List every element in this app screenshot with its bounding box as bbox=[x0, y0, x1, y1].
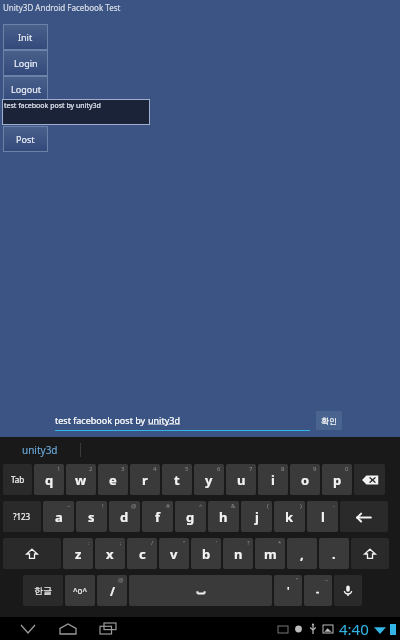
button[interactable]: 1 bbox=[34, 464, 64, 495]
button[interactable]: 8 bbox=[258, 464, 288, 495]
button[interactable]: Logout bbox=[3, 76, 48, 102]
button[interactable]: @ bbox=[97, 575, 127, 606]
button[interactable] bbox=[3, 538, 61, 569]
button[interactable]: ' bbox=[191, 538, 221, 569]
button[interactable]: ? bbox=[223, 538, 253, 569]
button[interactable]: ; bbox=[95, 538, 125, 569]
staticText: Login bbox=[14, 57, 38, 69]
button[interactable]: & bbox=[208, 501, 239, 532]
staticText: p bbox=[333, 471, 342, 489]
staticText: j bbox=[255, 508, 259, 526]
button[interactable]: Init bbox=[3, 24, 48, 50]
button[interactable]: unity3d bbox=[0, 437, 80, 462]
button[interactable]: test facebook post by unity3d bbox=[2, 99, 150, 125]
staticText: q bbox=[45, 471, 54, 489]
staticText: b bbox=[202, 545, 211, 563]
staticText: @ bbox=[118, 576, 124, 584]
button[interactable] bbox=[129, 575, 272, 606]
staticText: f bbox=[155, 508, 161, 526]
button[interactable]: ^ bbox=[175, 501, 206, 532]
staticText: y bbox=[205, 471, 213, 489]
staticText: 1 bbox=[57, 465, 61, 473]
staticText: / bbox=[151, 539, 154, 547]
button[interactable] bbox=[334, 575, 362, 606]
button[interactable]: 7 bbox=[226, 464, 256, 495]
button[interactable]: ^o^ bbox=[65, 575, 95, 606]
button[interactable]: @ bbox=[109, 501, 140, 532]
staticText: o bbox=[301, 471, 310, 489]
staticText: Post bbox=[16, 133, 35, 145]
staticText: 8 bbox=[281, 465, 285, 473]
button[interactable] bbox=[351, 538, 389, 569]
staticText: - bbox=[316, 584, 320, 598]
staticText: t bbox=[174, 471, 180, 489]
button[interactable]: " bbox=[274, 575, 302, 606]
staticText: s bbox=[88, 508, 95, 526]
staticText: unity3d bbox=[22, 443, 58, 457]
staticText: 4:40 bbox=[339, 619, 369, 639]
staticText: ? bbox=[247, 539, 250, 547]
button[interactable] bbox=[340, 501, 388, 532]
staticText: - bbox=[333, 502, 335, 510]
staticText: / bbox=[110, 583, 115, 599]
staticText: : bbox=[88, 539, 90, 547]
staticText: 4 bbox=[153, 465, 157, 473]
button[interactable]: 9 bbox=[290, 464, 320, 495]
button[interactable]: ?123 bbox=[3, 501, 41, 532]
staticText: * bbox=[278, 539, 282, 547]
staticText: Logout bbox=[11, 83, 41, 95]
button[interactable]: 6 bbox=[194, 464, 224, 495]
staticText: unity3d bbox=[148, 414, 180, 426]
staticText: ' bbox=[216, 539, 218, 547]
button[interactable]: ~ bbox=[43, 501, 74, 532]
button[interactable]: / bbox=[127, 538, 157, 569]
staticText: a bbox=[55, 508, 63, 526]
button[interactable]: 2 bbox=[66, 464, 96, 495]
button[interactable]: 3 bbox=[98, 464, 128, 495]
staticText: , bbox=[300, 545, 304, 563]
staticText: c bbox=[139, 545, 146, 563]
button[interactable]: - bbox=[307, 501, 338, 532]
staticText: . bbox=[332, 545, 336, 563]
staticText: 0 bbox=[345, 465, 349, 473]
staticText: ?123 bbox=[13, 511, 31, 522]
staticText: & bbox=[231, 502, 236, 510]
button[interactable]: test facebook post by bbox=[55, 409, 310, 431]
staticText: Init bbox=[18, 31, 33, 43]
staticText: 2 bbox=[89, 465, 93, 473]
button[interactable]: 5 bbox=[162, 464, 192, 495]
button[interactable]: . bbox=[319, 538, 349, 569]
button[interactable]: # bbox=[142, 501, 173, 532]
button[interactable]: ~ bbox=[304, 575, 332, 606]
staticText: v bbox=[170, 545, 178, 563]
staticText: ! bbox=[102, 502, 104, 510]
button[interactable]: ! bbox=[76, 501, 107, 532]
staticText: 6 bbox=[217, 465, 221, 473]
staticText: 한글 bbox=[34, 585, 52, 596]
button[interactable]: 한글 bbox=[23, 575, 63, 606]
button[interactable]: " bbox=[159, 538, 189, 569]
button[interactable] bbox=[354, 464, 385, 495]
button[interactable]: 확인 bbox=[316, 411, 342, 430]
button[interactable]: , bbox=[287, 538, 317, 569]
staticText: g bbox=[186, 508, 195, 526]
button[interactable]: 0 bbox=[322, 464, 352, 495]
button[interactable]: : bbox=[63, 538, 93, 569]
button[interactable]: Recent apps bbox=[90, 617, 126, 640]
button[interactable]: ) bbox=[274, 501, 305, 532]
button[interactable]: Post bbox=[3, 126, 48, 152]
staticText: r bbox=[142, 471, 148, 489]
staticText: x bbox=[106, 545, 114, 563]
staticText: test facebook post by bbox=[55, 414, 148, 426]
staticText: u bbox=[237, 471, 246, 489]
staticText: l bbox=[321, 508, 325, 526]
staticText: 7 bbox=[249, 465, 253, 473]
button[interactable]: Home bbox=[50, 617, 86, 640]
button[interactable]: 4 bbox=[130, 464, 160, 495]
staticText: ~ bbox=[67, 502, 71, 510]
button[interactable]: Tab bbox=[3, 464, 32, 495]
button[interactable]: Back bbox=[10, 617, 46, 640]
button[interactable]: * bbox=[255, 538, 285, 569]
button[interactable]: Login bbox=[3, 50, 48, 76]
button[interactable]: ( bbox=[241, 501, 272, 532]
